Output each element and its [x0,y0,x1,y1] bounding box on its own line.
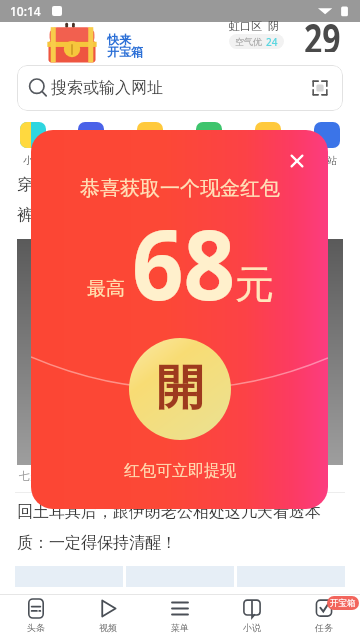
button[interactable] [44,22,100,65]
staticText: 菜单 [171,622,189,633]
button[interactable]: 健康 [179,122,238,167]
staticText: 回土耳其后，跟伊朗老公相处这几天看透本 质：一定得保持清醒！ [17,502,360,553]
button[interactable]: 搜索或输入网址 [17,65,343,111]
button[interactable]: 游戏 [120,122,179,167]
button[interactable]: 小说 [216,595,288,633]
button[interactable]: Close [279,143,315,179]
button[interactable]: 视频 [62,122,120,167]
staticText: 10:14 [10,3,41,19]
staticText: 恭喜获取一个现金红包 [80,176,280,201]
staticText: 任务 [315,622,333,633]
staticText: 68 [132,197,235,328]
staticText: 搜索或输入网址 [51,78,163,98]
staticText: 開 [156,358,204,418]
staticText: 视频 [99,622,117,633]
staticText: 头条 [27,622,45,633]
button[interactable]: 開 [129,338,231,440]
staticText: 红包可立即提现 [124,461,236,481]
button[interactable]: 小说 [4,122,62,167]
staticText: 小说 [243,622,261,633]
staticText: 24 [266,35,278,49]
button[interactable]: 头条 [0,595,72,633]
staticText: 元 [235,260,274,309]
staticText: 虹口区 阴 [229,18,279,33]
staticText: 29 [304,9,341,52]
button[interactable]: 菜单 [144,595,216,633]
staticText: 七天无理由退货 · 包邮 [19,468,127,483]
staticText: 快来 开宝箱 [107,32,143,60]
staticText: 商城 [258,154,278,167]
button[interactable]: Scan [311,79,329,97]
staticText: 空气优 [235,36,262,47]
staticText: 开宝箱 [330,598,356,609]
button[interactable]: 视频 [72,595,144,633]
staticText: 网站 [317,154,337,167]
button[interactable]: 网站 [297,122,356,167]
button[interactable]: 任务 [288,595,360,633]
staticText: 穿什么都好看的秘诀，其实就藏在这条 裤子里 [17,175,360,225]
button[interactable]: 商城 [238,122,297,167]
staticText: 小说 [23,154,43,167]
staticText: 最高 [87,277,125,301]
